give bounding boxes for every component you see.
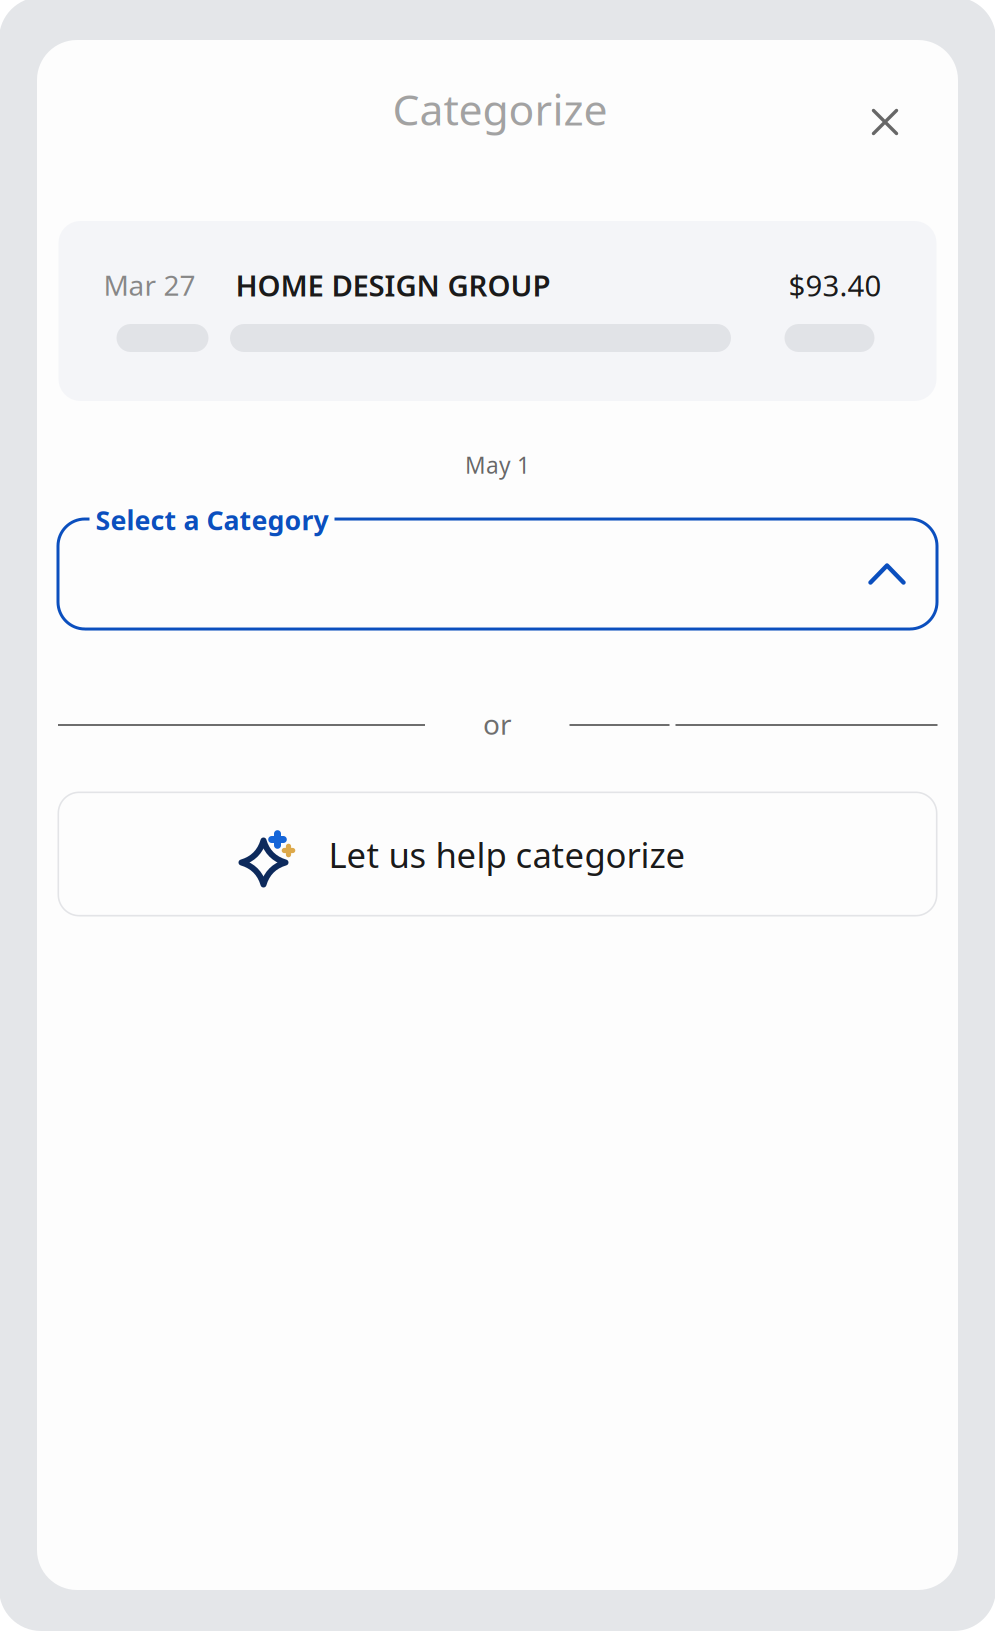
staticText: HOME DESIGN GROUP (235, 265, 550, 304)
button[interactable]: Select a Category (58, 519, 937, 629)
staticText: or (483, 705, 512, 743)
staticText: Select a Category (95, 502, 328, 538)
staticText: Mar 27 (103, 266, 195, 304)
staticText: May 1 (465, 450, 530, 480)
button[interactable]: Close (849, 86, 921, 158)
staticText: Categorize (392, 81, 607, 137)
button[interactable]: Let us help categorize (57, 791, 937, 916)
staticText: $93.40 (788, 265, 881, 304)
staticText: Let us help categorize (328, 831, 685, 877)
